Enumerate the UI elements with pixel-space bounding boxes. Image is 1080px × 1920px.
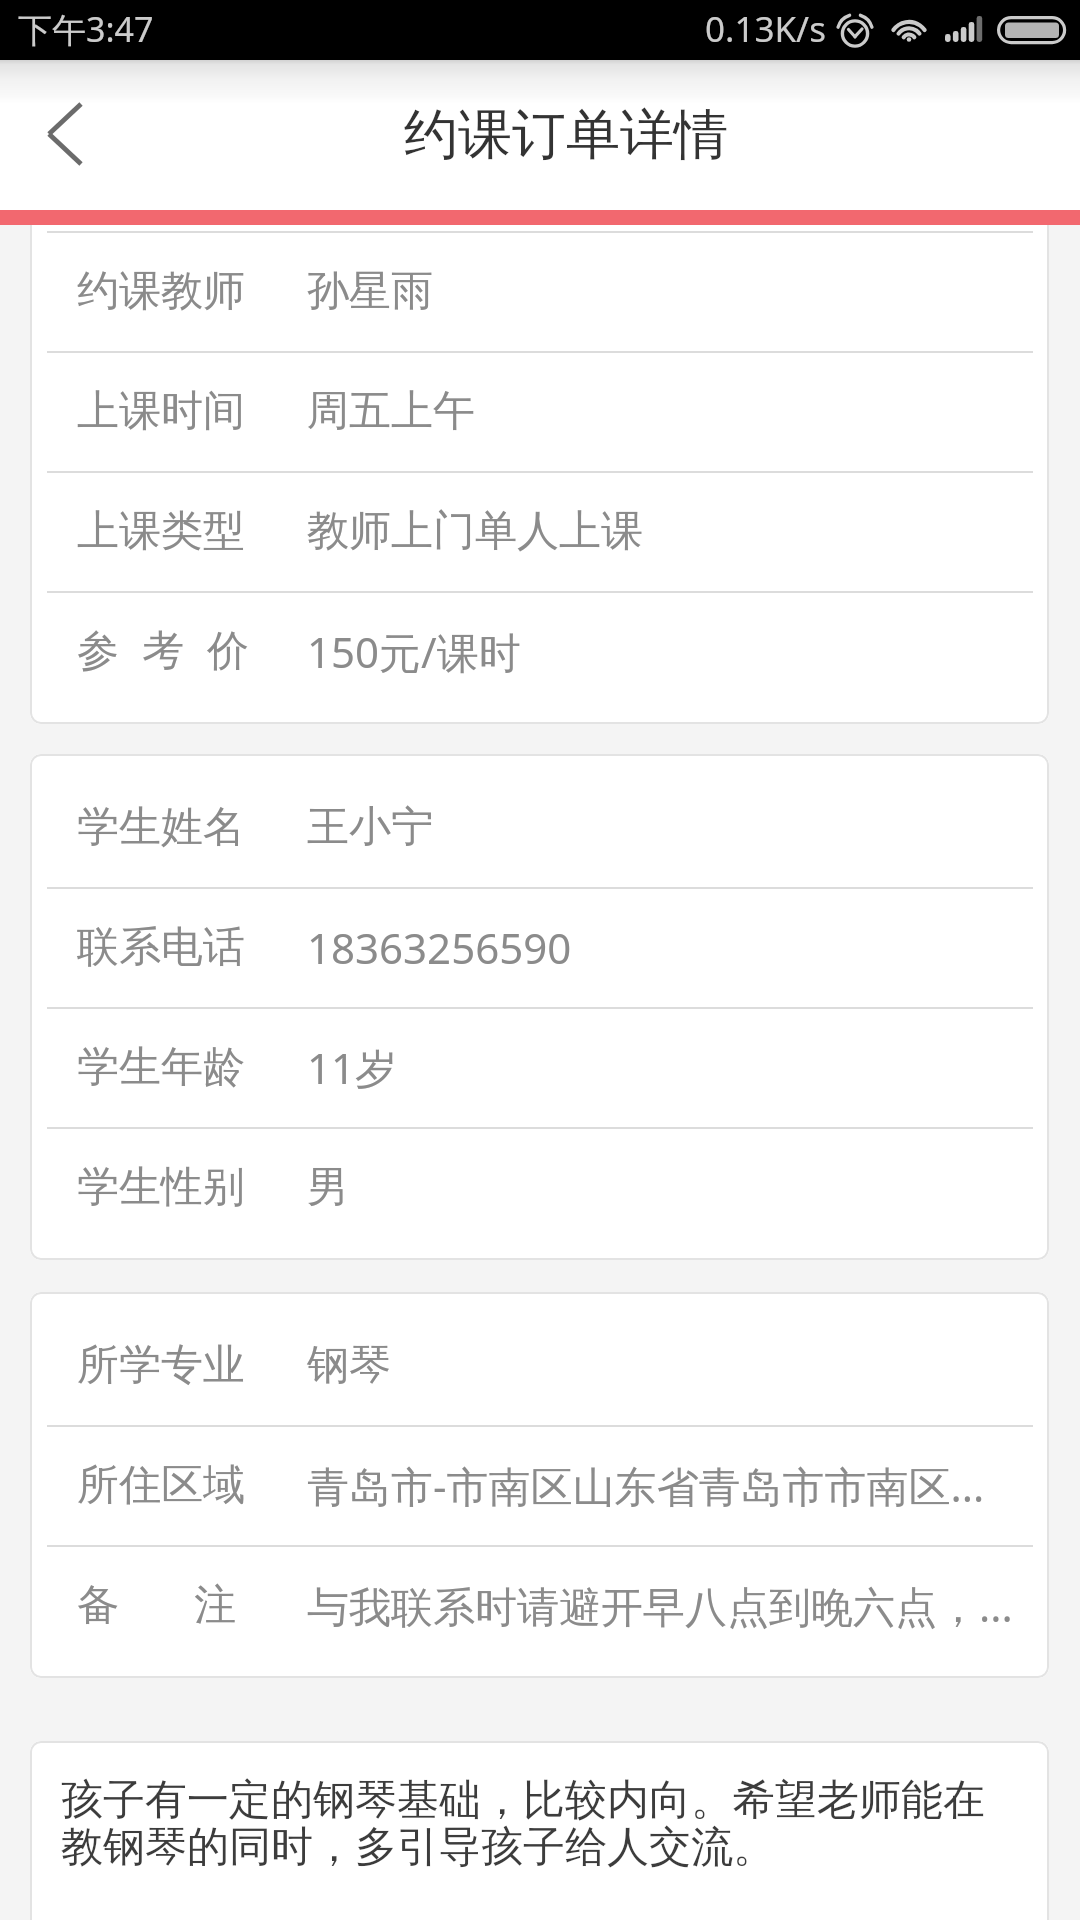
button[interactable]: 学生年龄 [30,1007,1049,1127]
staticText: 考 [142,625,184,678]
staticText: 学生姓名 [77,801,307,854]
staticText: 与我联系时请避开早八点到晚六点，... [307,1577,1013,1634]
button[interactable]: 所学专业 [30,1305,1049,1425]
staticText: 教师上门单人上课 [307,505,643,558]
button[interactable]: 备 [30,1545,1049,1665]
staticText: 周五上午 [307,385,475,438]
button[interactable]: 上课时间 [30,351,1049,471]
staticText: 联系电话 [77,921,307,974]
staticText: 王小宁 [307,801,433,854]
staticText: 11岁 [307,1039,398,1096]
staticText: 上课时间 [77,385,307,438]
staticText: 学生年龄 [77,1041,307,1094]
staticText: 孩子有一定的钢琴基础，比较内向。希望老师能在教钢琴的同时，多引导孩子给人交流。 [61,1774,1021,1874]
button[interactable]: 学生姓名 [30,767,1049,887]
staticText: 孙星雨 [307,265,433,318]
staticText: 20180914001 [307,143,572,200]
button[interactable]: 上课类型 [30,471,1049,591]
staticText: 注 [194,1579,236,1632]
staticText: 参 [77,625,119,678]
button[interactable]: 联系电话 [30,887,1049,1007]
button[interactable]: 学生性别 [30,1127,1049,1247]
button[interactable]: Back [0,60,130,210]
button[interactable]: 孩子有一定的钢琴基础，比较内向。希望老师能在教钢琴的同时，多引导孩子给人交流。 [30,1741,1049,1920]
staticText: 价 [207,625,249,678]
staticText: 0.13K/s [705,5,826,53]
staticText: 订单编号 [77,145,307,198]
button[interactable]: 参 [30,591,1049,711]
staticText: 约课订单详情 [404,101,728,169]
staticText: 上课类型 [77,505,307,558]
staticText: 150元/课时 [307,623,521,680]
staticText: 所学专业 [77,1339,307,1392]
staticText: 下午3:47 [18,6,154,52]
staticText: 18363256590 [307,919,572,976]
staticText: 青岛市-市南区山东省青岛市市南区... [307,1457,985,1514]
button[interactable]: 所住区域 [30,1425,1049,1545]
staticText: 钢琴 [307,1339,391,1392]
staticText: 男 [307,1161,349,1214]
staticText: 学生性别 [77,1161,307,1214]
staticText: 所住区域 [77,1459,307,1512]
button[interactable]: 约课教师 [30,231,1049,351]
staticText: 约课教师 [77,265,307,318]
button[interactable]: 订单编号 [30,111,1049,231]
staticText: 备 [77,1579,119,1632]
